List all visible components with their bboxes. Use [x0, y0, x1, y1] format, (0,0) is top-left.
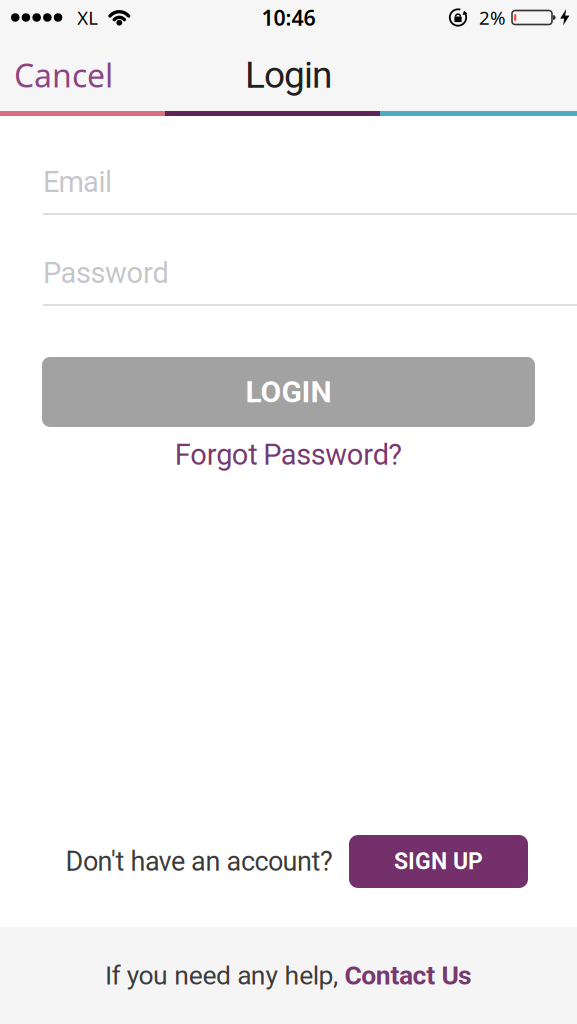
button[interactable]: Forgot Password?: [175, 438, 402, 472]
staticText: Login: [245, 53, 332, 97]
staticText: XL: [77, 5, 98, 30]
button[interactable]: Password: [0, 256, 577, 306]
staticText: If you need any help,: [105, 960, 345, 991]
staticText: Forgot Password?: [175, 438, 402, 472]
staticText: Email: [43, 165, 112, 199]
staticText: Password: [43, 256, 168, 290]
button[interactable]: Contact Us: [345, 960, 472, 991]
staticText: 10:46: [261, 3, 315, 32]
button[interactable]: Email: [0, 165, 577, 215]
button[interactable]: Cancel: [0, 54, 113, 96]
staticText: Cancel: [14, 54, 113, 96]
staticText: LOGIN: [245, 374, 331, 410]
button[interactable]: SIGN UP: [349, 835, 528, 888]
staticText: 2%: [479, 5, 506, 30]
staticText: Don't have an account?: [65, 846, 333, 877]
button[interactable]: LOGIN: [42, 357, 535, 427]
staticText: SIGN UP: [394, 848, 483, 875]
staticText: Contact Us: [345, 960, 472, 991]
